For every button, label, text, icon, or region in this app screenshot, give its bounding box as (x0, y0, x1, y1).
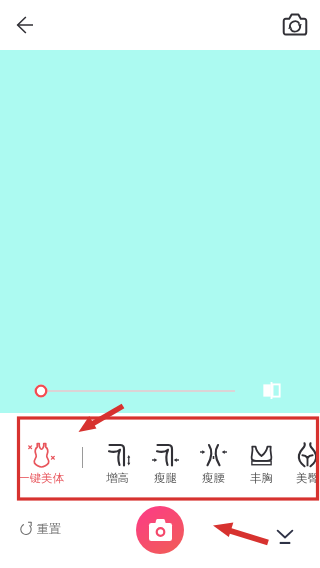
button[interactable]: 美臀 (285, 413, 320, 500)
button[interactable]: Back (5, 5, 45, 45)
staticText: 美臀 (296, 471, 319, 485)
staticText: 瘦腿 (154, 471, 177, 485)
staticText: 丰胸 (250, 471, 273, 485)
button[interactable]: Compare before and after (260, 379, 282, 401)
staticText: 重置 (37, 521, 61, 536)
button[interactable]: 丰胸 (237, 413, 285, 500)
button[interactable]: 一键美体 (0, 413, 82, 500)
button[interactable]: 增高 (83, 413, 141, 500)
button[interactable]: 重置 (20, 521, 61, 536)
staticText: 瘦腰 (202, 471, 225, 485)
button[interactable]: 瘦腿 (141, 413, 189, 500)
button[interactable]: Switch camera (278, 7, 312, 41)
staticText: 增高 (106, 471, 129, 485)
button[interactable]: 瘦腰 (189, 413, 237, 500)
staticText: 一键美体 (18, 471, 64, 485)
button[interactable]: Capture photo (136, 506, 184, 554)
button[interactable]: Collapse panel (270, 523, 299, 552)
